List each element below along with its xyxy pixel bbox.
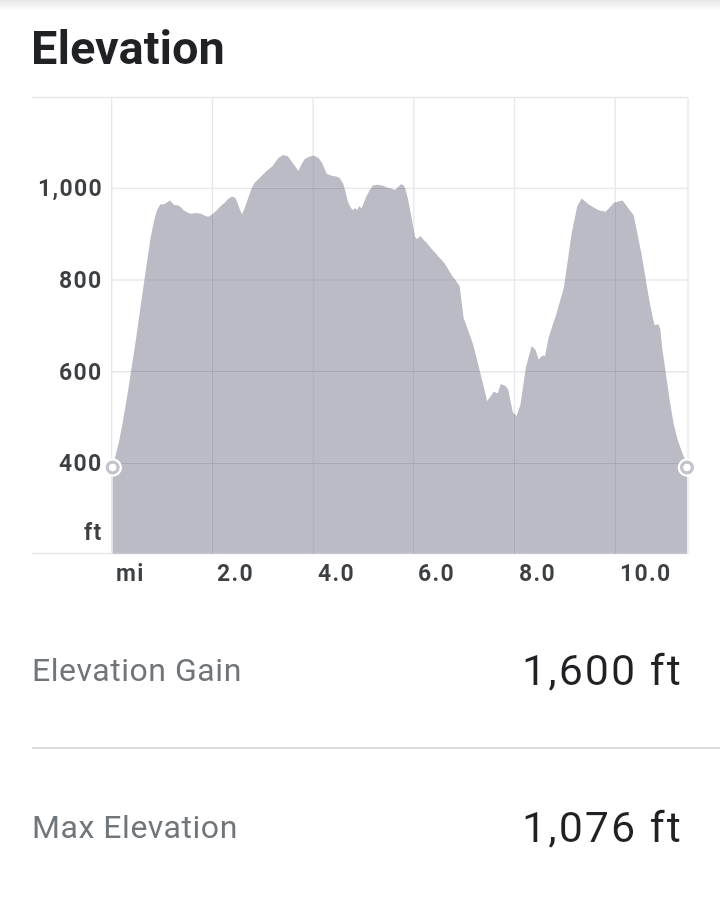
staticText: 2.0 (217, 560, 254, 587)
staticText: 8.0 (519, 560, 556, 587)
button[interactable]: Max Elevation (0, 749, 720, 899)
staticText: 1,076 ft (522, 802, 683, 852)
staticText: 800 (59, 267, 103, 294)
staticText: 4.0 (318, 560, 355, 587)
staticText: ft (84, 519, 103, 546)
staticText: Elevation Gain (32, 651, 242, 689)
staticText: 1,000 (38, 175, 103, 202)
staticText: mi (116, 560, 145, 587)
staticText: Elevation (31, 20, 225, 75)
staticText: 600 (59, 359, 103, 386)
staticText: 6.0 (418, 560, 455, 587)
staticText: Max Elevation (32, 808, 238, 846)
button[interactable]: Elevation Gain (0, 592, 720, 747)
staticText: 1,600 ft (522, 645, 683, 695)
staticText: 10.0 (620, 560, 672, 587)
staticText: 400 (59, 450, 103, 477)
